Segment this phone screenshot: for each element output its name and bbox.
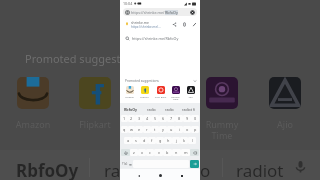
button[interactable]: RbfoOy [120,104,142,114]
staticText: Rummy Time [169,95,182,101]
staticText: 0 [194,116,197,121]
button[interactable]: y [159,126,167,133]
button[interactable]: Rummy Time [169,86,182,101]
button[interactable]: f [148,137,156,144]
button[interactable]: q [121,126,128,133]
button[interactable]: m [181,149,190,156]
button[interactable]: g [156,137,164,144]
button[interactable]: x [138,149,146,156]
button[interactable]: radiot [236,159,284,180]
button[interactable]: RbfoOy [16,159,79,180]
other: Collapse [193,79,197,83]
button[interactable]: Clear text [190,10,195,15]
staticText: t [154,127,156,132]
staticText: 7 [170,116,173,121]
button[interactable]: a [124,137,132,144]
button[interactable]: t [151,126,159,133]
button[interactable]: radio [142,104,160,114]
button[interactable]: 3 [135,115,143,122]
staticText: h [167,138,170,143]
staticText: w [130,127,133,132]
staticText: shrinke.me [131,20,149,25]
staticText: Flipkart [71,118,119,130]
button[interactable]: s [132,137,140,144]
button[interactable]: Back [136,173,141,178]
button[interactable]: c [146,149,154,156]
staticText: j [176,138,177,143]
staticText: RbfoOy [124,107,138,112]
staticText: m [184,150,188,155]
button[interactable]: https://shrinke.me/ [123,8,197,16]
button[interactable]: d [140,137,148,144]
button[interactable]: Shift [121,149,130,156]
button[interactable]: Ajio [184,86,197,98]
button[interactable]: Backspace [190,149,199,156]
button[interactable]: ra [104,159,121,180]
staticText: 5 [154,116,157,121]
button[interactable]: p [191,126,199,133]
button[interactable]: l [188,137,196,144]
button[interactable]: radiot fi [178,104,199,114]
staticText: radiot fi [182,107,196,112]
staticText: b [166,150,169,155]
staticText: ICICI Bank [154,95,167,98]
staticText: l [192,138,193,143]
button[interactable]: v [154,149,163,156]
button[interactable]: Recents [179,173,184,178]
button[interactable]: 9 [183,115,191,122]
button[interactable]: 2 [128,115,135,122]
button[interactable]: 8 [175,115,183,122]
button[interactable]: 5 [151,115,159,122]
button[interactable]: radio [160,104,178,114]
staticText: p [194,127,197,132]
button[interactable]: Share [172,22,177,27]
button[interactable]: flipkart [79,77,111,109]
button[interactable]: b [163,149,172,156]
staticText: ?1ॐ [122,162,128,166]
button[interactable]: Amazon [123,86,136,98]
button[interactable]: z [130,149,138,156]
button[interactable]: o [183,126,191,133]
staticText: Ajio [184,95,197,98]
button[interactable]: e [135,126,143,133]
button[interactable]: rummy [206,77,238,109]
button[interactable]: n [172,149,181,156]
staticText: क [129,162,132,167]
button[interactable]: Promoted suggestions [125,78,197,84]
staticText: c [149,150,151,155]
staticText: Rummy [198,118,246,130]
button[interactable]: ajio [269,77,301,109]
button[interactable]: w [128,126,135,133]
button[interactable]: Copy [182,22,187,27]
button[interactable]: Language [128,160,133,168]
button[interactable]: 7 [167,115,175,122]
staticText: Promoted suggestions [125,79,159,83]
button[interactable]: h [164,137,172,144]
button[interactable]: icici [141,77,173,109]
button[interactable]: r [143,126,151,133]
button[interactable]: k [180,137,188,144]
staticText: x [141,150,144,155]
button[interactable]: Go [190,160,199,168]
staticText: 1 [123,116,126,121]
button[interactable]: Home [158,173,163,178]
staticText: a [127,138,130,143]
button[interactable]: Voice input [293,159,308,174]
staticText: radio [147,107,156,112]
button[interactable]: o [200,159,211,180]
button[interactable]: j [172,137,180,144]
button[interactable]: shrinke.me [120,18,200,30]
button[interactable]: Symbols [121,160,128,168]
button[interactable]: amazon [17,77,49,109]
button[interactable]: 4 [143,115,151,122]
button[interactable]: 6 [159,115,167,122]
button[interactable]: 0 [191,115,199,122]
button[interactable]: Edit [192,22,197,27]
button[interactable]: ICICI Bank [154,86,167,98]
button[interactable]: i [175,126,183,133]
button[interactable]: https://shrinke.me/RbfoOy [120,33,200,43]
button[interactable]: u [167,126,175,133]
button[interactable]: 1 [121,115,128,122]
button[interactable]: Flipkart [138,86,151,98]
